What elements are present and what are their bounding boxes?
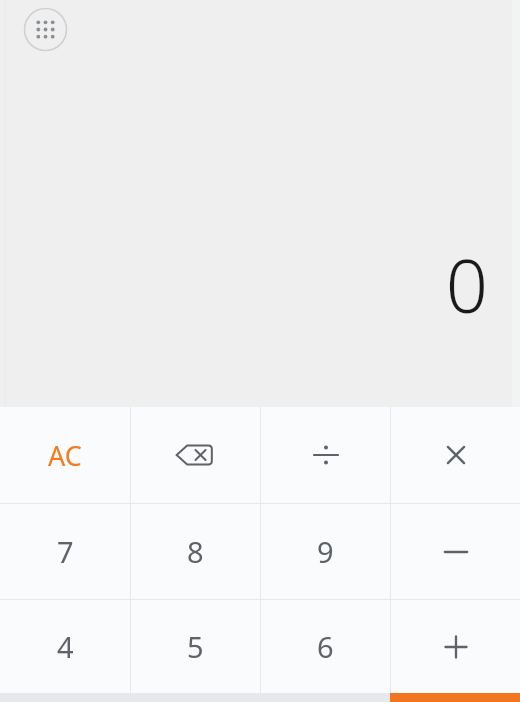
- button[interactable]: 8: [131, 504, 260, 599]
- staticText: 6: [317, 627, 334, 666]
- button[interactable]: Minus: [391, 504, 520, 599]
- staticText: AC: [48, 437, 82, 474]
- button[interactable]: 5: [131, 600, 260, 693]
- button[interactable]: 9: [261, 504, 390, 599]
- staticText: 9: [317, 532, 334, 571]
- button[interactable]: Multiply: [391, 407, 520, 503]
- staticText: 0: [445, 234, 488, 335]
- button[interactable]: Backspace: [131, 407, 260, 503]
- staticText: 8: [187, 532, 204, 571]
- staticText: 4: [57, 627, 74, 666]
- button[interactable]: Plus: [391, 600, 520, 693]
- button[interactable]: Apps: [23, 7, 68, 52]
- button[interactable]: Divide: [261, 407, 390, 503]
- staticText: 5: [187, 627, 204, 666]
- staticText: 7: [57, 532, 74, 571]
- button[interactable]: 7: [0, 504, 130, 599]
- button[interactable]: AC: [0, 407, 130, 503]
- button[interactable]: 4: [0, 600, 130, 693]
- button[interactable]: 6: [261, 600, 390, 693]
